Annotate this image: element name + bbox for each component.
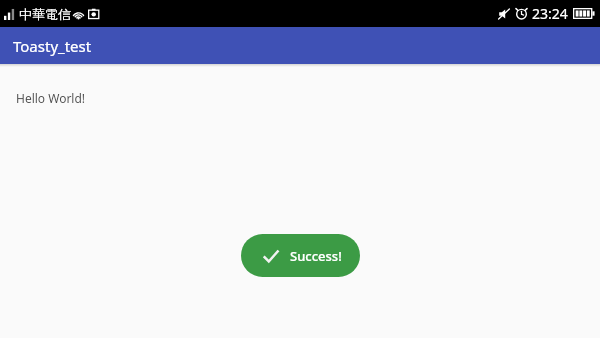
staticText: Success! — [290, 247, 342, 265]
staticText: 23:24 — [532, 4, 568, 23]
staticText: Hello World! — [16, 90, 86, 106]
staticText: Toasty_test — [13, 36, 92, 56]
staticText: 中華電信 — [19, 6, 71, 22]
button[interactable]: Success! — [241, 234, 360, 277]
button[interactable]: Toasty_test — [0, 27, 600, 64]
